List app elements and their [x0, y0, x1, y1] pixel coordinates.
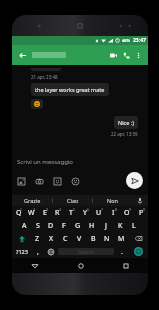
button[interactable]: [32, 52, 107, 58]
button[interactable]: Sticker: [51, 175, 63, 187]
button[interactable]: 6: [78, 206, 92, 219]
button[interactable]: Home: [58, 258, 103, 273]
button[interactable]: 0: [134, 206, 148, 219]
button[interactable]: 3: [38, 206, 51, 219]
button[interactable]: Voice input: [132, 195, 148, 206]
button[interactable]: Change language: [44, 245, 57, 258]
staticText: N: [104, 234, 110, 244]
button[interactable]: Backspace: [128, 232, 148, 245]
staticText: ,: [37, 247, 39, 257]
staticText: R: [55, 208, 60, 218]
staticText: 46%: [122, 38, 131, 43]
button[interactable]: 8: [106, 206, 120, 219]
button[interactable]: H: [85, 219, 99, 232]
staticText: 23:47: [133, 37, 146, 44]
staticText: the layer works great mate: [35, 86, 105, 93]
staticText: C: [63, 234, 68, 244]
staticText: Y: [83, 208, 87, 218]
staticText: J: [105, 221, 107, 231]
button[interactable]: ?123: [12, 245, 31, 258]
button[interactable]: the layer works great mate: [31, 83, 109, 96]
button[interactable]: C: [58, 232, 72, 245]
staticText: B: [91, 234, 96, 244]
staticText: W: [28, 208, 35, 218]
staticText: F: [62, 221, 66, 231]
button[interactable]: M: [114, 232, 128, 245]
button[interactable]: X: [44, 232, 58, 245]
button[interactable]: Shift: [12, 232, 31, 245]
button[interactable]: Video call: [107, 49, 120, 62]
staticText: 6: [87, 207, 90, 212]
button[interactable]: .: [115, 245, 128, 258]
button[interactable]: V: [72, 232, 86, 245]
staticText: K: [118, 221, 123, 231]
staticText: ?123: [16, 248, 28, 255]
button[interactable]: Recents: [103, 258, 148, 273]
button[interactable]: Back: [12, 258, 58, 273]
staticText: E: [43, 208, 47, 218]
button[interactable]: K: [113, 219, 127, 232]
staticText: Ciao: [67, 197, 79, 204]
staticText: P: [139, 208, 144, 218]
staticText: S: [36, 221, 40, 231]
staticText: 4: [59, 207, 62, 212]
button[interactable]: Z: [31, 232, 44, 245]
button[interactable]: S: [31, 219, 44, 232]
staticText: 7: [101, 207, 104, 212]
staticText: Nice :): [118, 119, 134, 126]
button[interactable]: A: [18, 219, 31, 232]
button[interactable]: 7: [92, 206, 106, 219]
staticText: 1: [20, 207, 23, 212]
button[interactable]: Camera: [33, 175, 45, 187]
button[interactable]: 1: [12, 206, 25, 219]
button[interactable]: [31, 99, 43, 109]
staticText: 5: [73, 207, 76, 212]
button[interactable]: Emoji keyboard: [128, 245, 148, 258]
button[interactable]: L: [127, 219, 141, 232]
button[interactable]: N: [100, 232, 114, 245]
staticText: 22 apr, 13:59: [111, 131, 138, 137]
button[interactable]: ,: [31, 245, 44, 258]
button[interactable]: Non: [93, 195, 132, 206]
staticText: 8: [115, 207, 118, 212]
button[interactable]: Nice :): [114, 116, 138, 129]
staticText: H: [89, 221, 95, 231]
staticText: 21 apr, 23:48: [31, 74, 58, 80]
staticText: Scrivi un messaggio: [17, 158, 73, 166]
button[interactable]: Call: [120, 49, 133, 62]
button[interactable]: Space: [58, 248, 114, 255]
button[interactable]: More options: [133, 50, 144, 61]
button[interactable]: G: [71, 219, 85, 232]
staticText: 3: [46, 207, 49, 212]
staticText: Q: [16, 208, 22, 218]
staticText: D: [48, 221, 54, 231]
staticText: A: [22, 221, 27, 231]
staticText: 9: [129, 207, 132, 212]
staticText: Grazie: [24, 197, 41, 204]
button[interactable]: Back: [16, 49, 29, 62]
staticText: 2: [33, 207, 36, 212]
staticText: I: [112, 208, 115, 218]
button[interactable]: Gallery: [15, 175, 27, 187]
staticText: .: [121, 247, 123, 257]
button[interactable]: J: [99, 219, 113, 232]
staticText: U: [96, 208, 102, 218]
button[interactable]: D: [44, 219, 57, 232]
button[interactable]: 4: [51, 206, 64, 219]
button[interactable]: Send: [126, 172, 143, 189]
button[interactable]: Grazie: [12, 195, 52, 206]
button[interactable]: 5: [64, 206, 78, 219]
staticText: L: [132, 221, 136, 231]
button[interactable]: B: [86, 232, 100, 245]
staticText: Non: [107, 197, 118, 204]
staticText: T: [69, 208, 73, 218]
button[interactable]: 9: [120, 206, 134, 219]
staticText: M: [118, 234, 125, 244]
staticText: O: [124, 208, 130, 218]
button[interactable]: 2: [25, 206, 38, 219]
button[interactable]: Emoji: [69, 175, 81, 187]
button[interactable]: Ciao: [53, 195, 92, 206]
staticText: X: [49, 234, 54, 244]
staticText: V: [77, 234, 82, 244]
button[interactable]: F: [57, 219, 71, 232]
